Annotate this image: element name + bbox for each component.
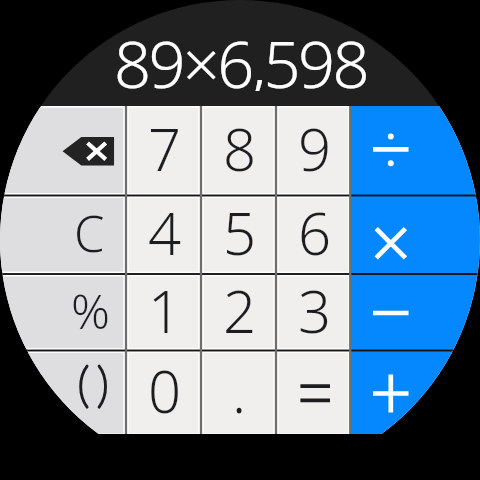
staticText: 8 [223, 109, 257, 188]
staticText: 89×6,598 [114, 19, 367, 91]
button[interactable]: Plus [351, 351, 480, 435]
button[interactable]: Multiply [351, 196, 480, 275]
button[interactable]: 6 [276, 196, 351, 275]
button[interactable]: 0 [126, 351, 201, 435]
staticText: % [71, 278, 110, 343]
button[interactable]: Parentheses [0, 351, 126, 435]
staticText: 4 [148, 193, 182, 272]
button[interactable]: 3 [276, 274, 351, 351]
staticText: C [74, 200, 105, 267]
button[interactable]: Equals [276, 351, 351, 435]
button[interactable]: 8 [201, 106, 276, 196]
staticText: 3 [298, 271, 332, 348]
button[interactable]: 4 [126, 196, 201, 275]
staticText: . [232, 351, 247, 430]
staticText: 0 [148, 351, 182, 430]
staticText: 6 [298, 193, 332, 272]
button[interactable]: 1 [126, 274, 201, 351]
button[interactable]: . [201, 351, 276, 435]
button[interactable]: Backspace [0, 106, 126, 196]
staticText: 2 [223, 271, 257, 348]
staticText: 5 [223, 193, 257, 272]
button[interactable]: 7 [126, 106, 201, 196]
button[interactable]: Divide [351, 106, 480, 196]
staticText: 9 [298, 109, 332, 188]
button[interactable]: 2 [201, 274, 276, 351]
button[interactable]: % [0, 274, 126, 351]
staticText: 1 [148, 271, 182, 348]
button[interactable]: C [0, 196, 126, 275]
button[interactable]: 5 [201, 196, 276, 275]
button[interactable]: 9 [276, 106, 351, 196]
button[interactable]: Minus [351, 274, 480, 351]
staticText: 7 [148, 109, 182, 188]
